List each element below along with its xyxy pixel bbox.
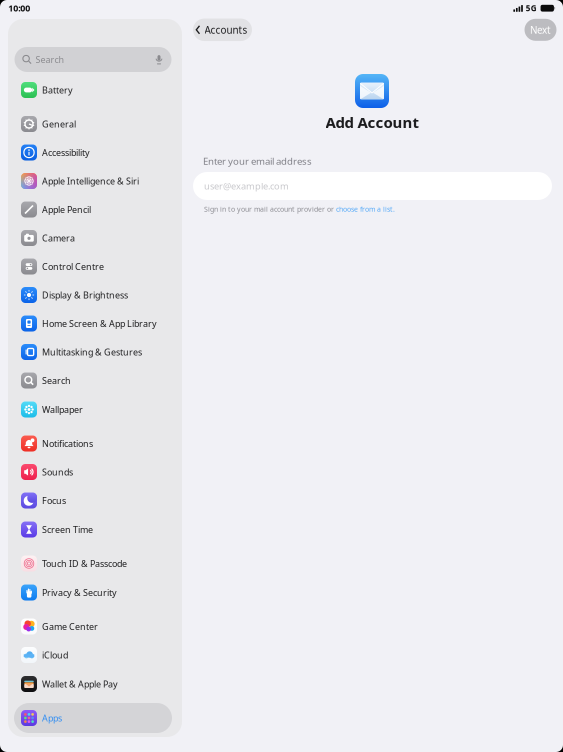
staticText: Apps — [42, 712, 62, 724]
button[interactable]: Screen Time — [14, 514, 172, 544]
staticText: Wallet & Apple Pay — [42, 678, 118, 690]
staticText: Game Center — [42, 620, 98, 633]
button[interactable]: Multitasking & Gestures — [14, 337, 172, 367]
staticText: Screen Time — [42, 523, 93, 536]
staticText: choose from a list. — [336, 204, 395, 214]
staticText: Apple Intelligence & Siri — [42, 175, 139, 187]
staticText: Camera — [42, 232, 75, 244]
button[interactable]: Battery — [14, 75, 172, 105]
staticText: Display & Brightness — [42, 289, 128, 301]
button[interactable]: Wallet & Apple Pay — [14, 669, 172, 699]
button[interactable]: Notifications — [14, 428, 172, 458]
staticText: Add Account — [325, 112, 418, 132]
staticText: 5G — [526, 3, 537, 14]
staticText: General — [42, 118, 76, 130]
button[interactable]: Touch ID & Passcode — [14, 548, 172, 578]
button[interactable]: Apple Intelligence & Siri — [14, 166, 172, 196]
staticText: Home Screen & App Library — [42, 317, 157, 330]
button[interactable]: Home Screen & App Library — [14, 308, 172, 338]
button[interactable]: General — [14, 109, 172, 139]
button[interactable]: Next — [524, 19, 556, 41]
button[interactable]: Sounds — [14, 457, 172, 487]
staticText: Accounts — [204, 23, 247, 36]
button[interactable]: Accessibility — [14, 137, 172, 167]
button[interactable]: Apps — [14, 703, 172, 733]
staticText: Accessibility — [42, 146, 90, 159]
button[interactable]: Control Centre — [14, 251, 172, 281]
button[interactable]: Privacy & Security — [14, 577, 172, 607]
staticText: Privacy & Security — [42, 586, 117, 599]
staticText: Next — [530, 23, 551, 36]
button[interactable]: Game Center — [14, 611, 172, 641]
staticText: Focus — [42, 494, 66, 507]
staticText: user@example.com — [204, 180, 289, 192]
button[interactable]: Display & Brightness — [14, 280, 172, 310]
staticText: 10:00 — [8, 2, 30, 14]
staticText: Sign in to your mail account provider or — [204, 204, 336, 214]
button[interactable]: Camera — [14, 223, 172, 253]
button[interactable]: Focus — [14, 485, 172, 515]
button[interactable]: iCloud — [14, 640, 172, 670]
staticText: Sounds — [42, 466, 73, 478]
staticText: Multitasking & Gestures — [42, 346, 142, 358]
button[interactable]: Apple Pencil — [14, 194, 172, 224]
staticText: Control Centre — [42, 260, 104, 273]
button[interactable]: Search — [14, 365, 172, 395]
button[interactable]: Wallpaper — [14, 394, 172, 424]
staticText: Search — [42, 374, 71, 387]
staticText: Notifications — [42, 437, 93, 450]
staticText: Battery — [42, 84, 73, 96]
button[interactable]: Accounts — [193, 19, 252, 41]
staticText: Wallpaper — [42, 403, 83, 416]
staticText: Touch ID & Passcode — [42, 557, 127, 570]
staticText: Search — [35, 53, 64, 66]
staticText: iCloud — [42, 649, 68, 661]
staticText: Enter your email address — [203, 154, 312, 168]
staticText: Apple Pencil — [42, 203, 91, 216]
